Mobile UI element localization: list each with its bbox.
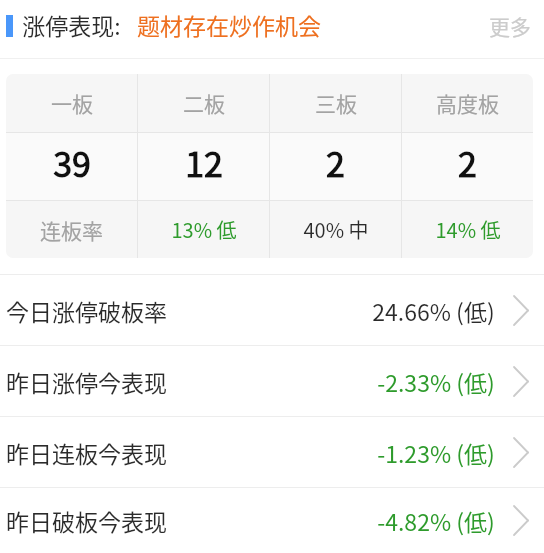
staticText: 昨日连板今表现 [6, 436, 167, 469]
staticText: -2.33% (低) [377, 365, 495, 398]
button[interactable]: 一板 [6, 74, 137, 132]
staticText: 12 [185, 138, 223, 187]
button[interactable]: 二板 [138, 74, 269, 132]
staticText: 题材存在炒作机会 [137, 8, 321, 41]
staticText: 13% 低 [171, 215, 237, 244]
other: Open details [513, 366, 529, 397]
staticText: -4.82% (低) [377, 504, 495, 537]
button[interactable]: 昨日涨停今表现 [0, 346, 544, 416]
other: Open details [513, 505, 529, 536]
staticText: 昨日破板今表现 [6, 504, 167, 537]
other: Open details [513, 295, 529, 326]
staticText: 一板 [51, 88, 93, 118]
staticText: 2 [326, 138, 345, 187]
other: Open details [513, 437, 529, 468]
staticText: 连板率 [40, 215, 103, 245]
staticText: 高度板 [436, 88, 499, 118]
staticText: 三板 [315, 88, 357, 118]
staticText: 24.66% (低) [372, 294, 495, 327]
button[interactable]: 高度板 [402, 74, 533, 132]
button[interactable]: 今日涨停破板率 [0, 275, 544, 345]
button[interactable]: 昨日连板今表现 [0, 417, 544, 487]
staticText: 涨停表现: [22, 8, 121, 41]
button[interactable]: 三板 [270, 74, 401, 132]
button[interactable]: 更多 [476, 2, 544, 50]
staticText: 14% 低 [435, 215, 501, 244]
staticText: -1.23% (低) [377, 436, 495, 469]
staticText: 2 [458, 138, 477, 187]
staticText: 更多 [489, 11, 531, 41]
staticText: 二板 [183, 88, 225, 118]
button[interactable]: 昨日破板今表现 [0, 488, 544, 553]
staticText: 40% 中 [303, 215, 369, 244]
staticText: 昨日涨停今表现 [6, 365, 167, 398]
staticText: 39 [53, 138, 91, 187]
staticText: 今日涨停破板率 [6, 294, 167, 327]
